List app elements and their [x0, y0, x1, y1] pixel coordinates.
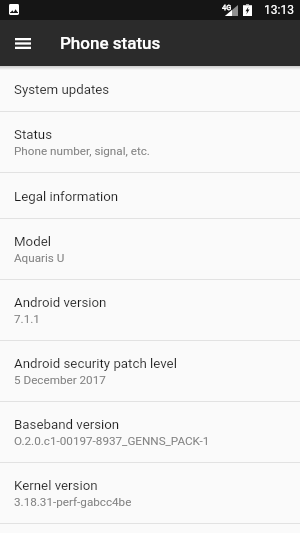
- staticText: 7.1.1: [14, 312, 40, 326]
- staticText: 3.18.31-perf-gabcc4be: [14, 495, 132, 509]
- button[interactable]: Android security patch level: [0, 341, 300, 401]
- button[interactable]: Model: [0, 219, 300, 279]
- button[interactable]: System updates: [0, 66, 300, 111]
- staticText: Model: [14, 234, 51, 250]
- staticText: 4G: [222, 3, 232, 12]
- button[interactable]: Legal information: [0, 173, 300, 218]
- button[interactable]: Open navigation menu: [0, 20, 46, 66]
- staticText: Status: [14, 127, 53, 143]
- button[interactable]: Kernel version: [0, 463, 300, 523]
- staticText: 13:13: [264, 3, 294, 17]
- button[interactable]: Baseband version: [0, 402, 300, 462]
- staticText: Phone status: [60, 33, 161, 53]
- staticText: Baseband version: [14, 417, 120, 433]
- button[interactable]: Status: [0, 112, 300, 172]
- staticText: System updates: [14, 82, 110, 98]
- staticText: Phone number, signal, etc.: [14, 144, 150, 158]
- staticText: O.2.0.c1-00197-8937_GENNS_PACK-1: [14, 434, 210, 448]
- staticText: Android security patch level: [14, 356, 177, 372]
- staticText: Kernel version: [14, 478, 98, 494]
- staticText: Android version: [14, 295, 107, 311]
- staticText: 5 December 2017: [14, 373, 106, 387]
- button[interactable]: Android version: [0, 280, 300, 340]
- staticText: Legal information: [14, 189, 119, 205]
- staticText: Aquaris U: [14, 251, 65, 265]
